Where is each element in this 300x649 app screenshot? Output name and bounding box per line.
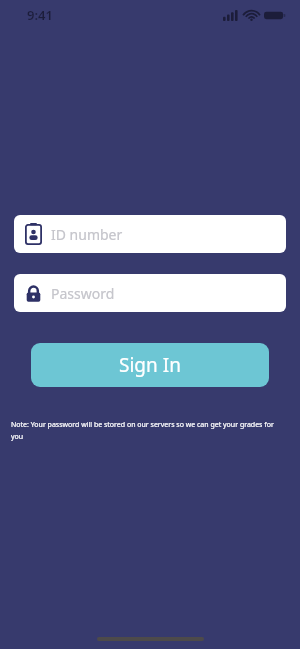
staticText: Password bbox=[51, 284, 115, 303]
button[interactable]: ID number bbox=[14, 215, 286, 253]
button[interactable]: Sign In bbox=[31, 343, 269, 387]
button[interactable]: Password bbox=[14, 274, 286, 312]
staticText: Note: Your password will be stored on ou… bbox=[11, 420, 278, 441]
staticText: Sign In bbox=[119, 352, 181, 378]
staticText: 9:41 bbox=[27, 6, 53, 24]
other: Password bbox=[25, 283, 42, 304]
other: ID number bbox=[25, 223, 42, 245]
staticText: ID number bbox=[51, 225, 123, 244]
